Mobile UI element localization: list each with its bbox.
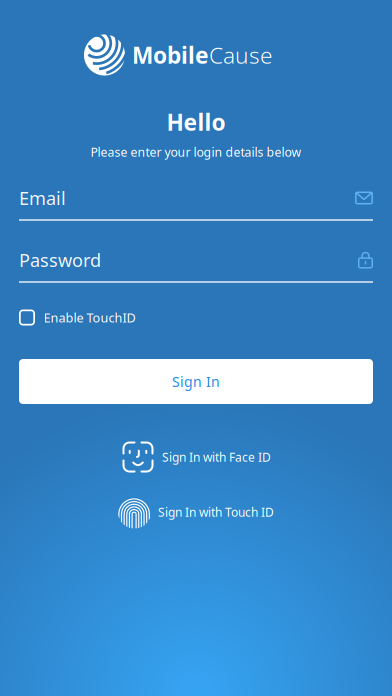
button[interactable]: Sign In with Face ID — [121, 438, 271, 476]
button[interactable]: Sign In — [19, 359, 373, 404]
staticText: Mobile — [132, 40, 209, 70]
staticText: Sign In — [172, 372, 220, 391]
staticText: Please enter your login details below — [90, 144, 301, 160]
button[interactable]: Enable TouchID — [19, 304, 373, 330]
staticText: Hello — [166, 107, 225, 137]
staticText: Cause — [209, 40, 273, 70]
staticText: Sign In with Touch ID — [158, 504, 274, 520]
staticText: Password — [19, 248, 101, 272]
staticText: Email — [19, 186, 66, 210]
staticText: Sign In with Face ID — [162, 449, 271, 465]
button[interactable]: Sign In with Touch ID — [118, 493, 274, 531]
staticText: Enable TouchID — [43, 309, 135, 326]
